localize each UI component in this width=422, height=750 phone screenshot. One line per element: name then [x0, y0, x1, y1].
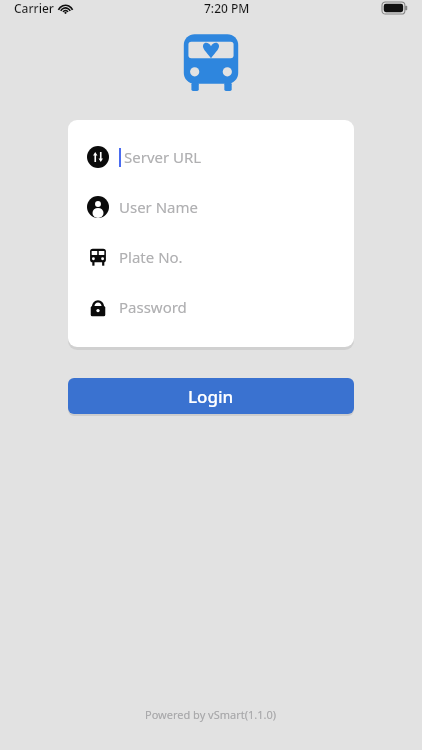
other: Password [87, 296, 109, 318]
staticText: Password [119, 297, 187, 317]
button[interactable]: User Name [87, 194, 338, 220]
button[interactable]: Password [87, 294, 338, 320]
staticText: User Name [119, 197, 199, 217]
button[interactable]: Plate No. [87, 244, 338, 270]
staticText: Login [188, 385, 234, 408]
other: User Name [87, 196, 109, 218]
staticText: Carrier [14, 0, 54, 16]
staticText: Server URL [124, 147, 202, 167]
button[interactable]: Server URL [87, 144, 338, 170]
other: Plate No. [87, 246, 109, 268]
staticText: Plate No. [119, 247, 183, 267]
staticText: Powered by vSmart(1.1.0) [145, 707, 277, 722]
other: Server URL [87, 146, 109, 168]
staticText: 7:20 PM [204, 0, 250, 16]
button[interactable]: Login [68, 378, 354, 414]
